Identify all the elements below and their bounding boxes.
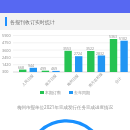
staticText: 5900 bbox=[2, 33, 11, 38]
staticText: 2450 bbox=[2, 55, 11, 60]
staticText: 3600 bbox=[2, 48, 11, 53]
staticText: 本期订数 bbox=[45, 90, 61, 95]
staticText: 300 bbox=[2, 69, 9, 74]
staticText: 2832 bbox=[96, 51, 105, 56]
staticText: 合计 bbox=[114, 76, 124, 85]
staticText: 2724 bbox=[74, 51, 83, 56]
staticText: 人民日报 bbox=[21, 73, 35, 87]
staticText: 3522 bbox=[86, 46, 95, 51]
staticText: 499 bbox=[40, 66, 47, 71]
staticText: 南方农村报 bbox=[88, 72, 104, 89]
staticText: 各报刊收订实时统计 bbox=[10, 19, 55, 25]
staticText: 4750 bbox=[2, 40, 11, 45]
button[interactable]: 各报刊收订实时统计 bbox=[0, 13, 130, 30]
staticText: 668 bbox=[18, 65, 25, 70]
staticText: 469 bbox=[51, 66, 58, 71]
staticText: 梅州日报 bbox=[66, 73, 80, 87]
staticText: 去年同期 bbox=[74, 90, 90, 95]
staticText: 梅州市报单位2021年完成发行任务完成进度情况 bbox=[0, 104, 130, 110]
button[interactable]: 本期订数 bbox=[40, 90, 61, 95]
staticText: 5363 bbox=[109, 34, 118, 39]
staticText: 944 bbox=[28, 63, 35, 68]
staticText: 3553 bbox=[63, 46, 72, 51]
staticText: 5102 bbox=[119, 36, 128, 41]
staticText: 1420 bbox=[2, 62, 11, 67]
staticText: 南方日报 bbox=[44, 73, 58, 87]
button[interactable]: 去年同期 bbox=[69, 90, 90, 95]
